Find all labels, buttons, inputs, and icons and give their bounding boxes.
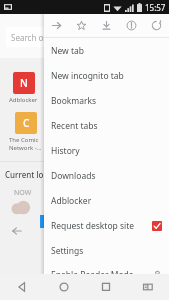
staticText: Recent tabs xyxy=(51,120,162,132)
staticText: Enable Reader Mode xyxy=(51,269,153,281)
button[interactable]: History xyxy=(44,138,169,163)
button[interactable]: New tab xyxy=(44,38,169,63)
button[interactable]: Forward xyxy=(44,14,69,37)
button[interactable]: N xyxy=(9,72,38,104)
button[interactable]: New incognito tab xyxy=(44,63,169,88)
button[interactable]: Home xyxy=(43,274,85,300)
button[interactable]: C xyxy=(9,112,42,152)
staticText: Search or type web address xyxy=(11,32,115,43)
staticText: Adblocker xyxy=(9,96,38,104)
button[interactable]: Adblocker xyxy=(44,188,169,213)
staticText: Request desktop site xyxy=(51,220,152,232)
button[interactable]: Enable Reader Mode xyxy=(44,263,169,286)
staticText: The Comic Network -… xyxy=(9,136,42,152)
button[interactable]: Reload xyxy=(144,14,169,37)
staticText: Adblocker xyxy=(51,195,162,207)
staticText: 15:57 xyxy=(145,2,166,13)
staticText: Bookmarks xyxy=(51,95,162,107)
staticText: NOW xyxy=(14,188,32,198)
staticText: C xyxy=(23,116,30,130)
staticText: Settings xyxy=(51,245,162,257)
staticText: Downloads xyxy=(51,170,162,182)
button[interactable]: Back xyxy=(0,274,43,300)
button[interactable]: Page info xyxy=(119,14,144,37)
staticText: New incognito tab xyxy=(51,70,162,82)
staticText: History xyxy=(51,145,162,157)
button[interactable]: Recents xyxy=(85,274,127,300)
staticText: N xyxy=(20,76,28,90)
button[interactable]: Bookmarks xyxy=(44,88,169,113)
button[interactable]: Request desktop site xyxy=(44,213,169,238)
button[interactable]: Downloads xyxy=(44,163,169,188)
staticText: New tab xyxy=(51,45,162,57)
button[interactable]: Download xyxy=(94,14,119,37)
button[interactable]: Bookmark xyxy=(69,14,94,37)
button[interactable]: Recent tabs xyxy=(44,113,169,138)
button[interactable]: Search or type web address xyxy=(6,27,136,47)
staticText: Current location xyxy=(5,169,68,180)
button[interactable]: Screenshot xyxy=(127,274,169,300)
button[interactable]: Settings xyxy=(44,238,169,263)
